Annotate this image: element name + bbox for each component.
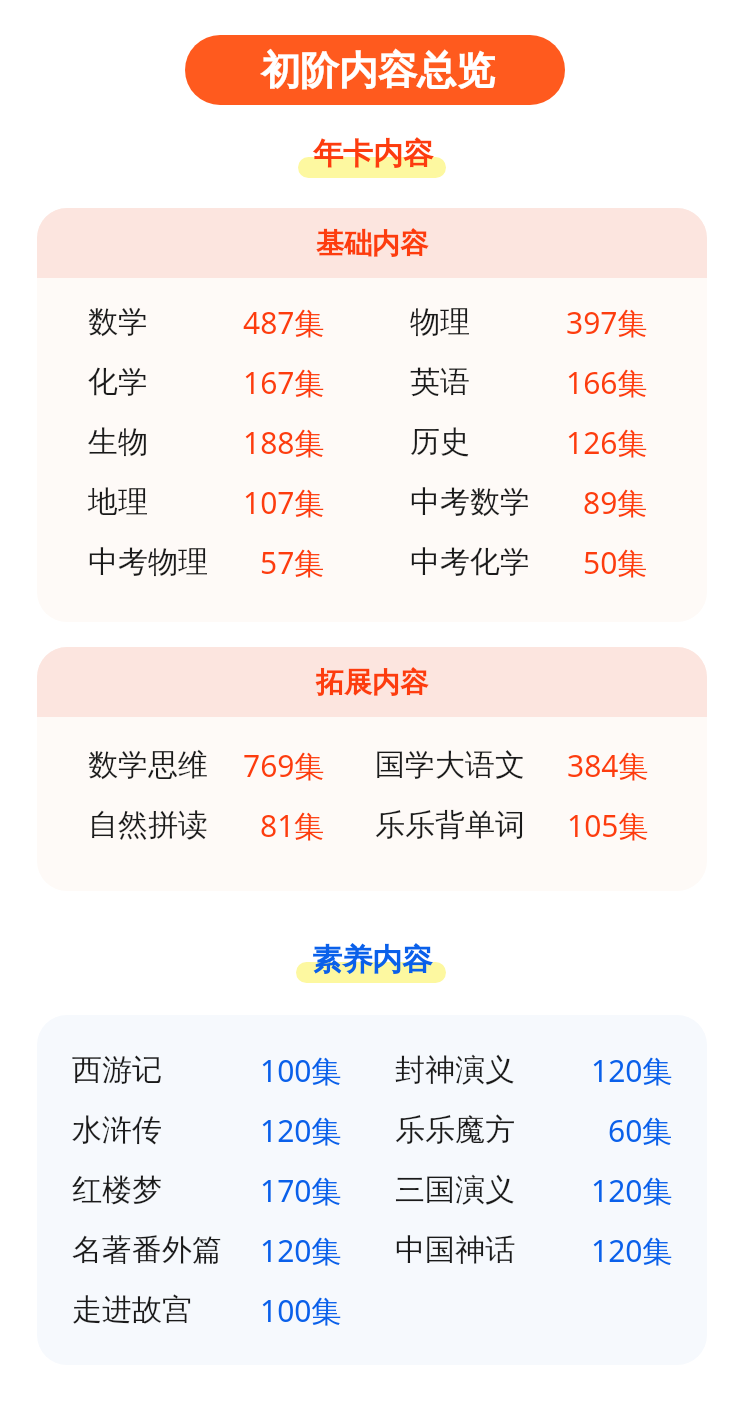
staticText: 化学 <box>88 363 148 401</box>
staticText: 数学 <box>88 303 148 341</box>
staticText: 188集 <box>243 422 325 463</box>
staticText: 105集 <box>567 805 649 846</box>
staticText: 397集 <box>566 302 648 343</box>
staticText: 封神演义 <box>395 1051 515 1089</box>
staticText: 红楼梦 <box>72 1171 162 1209</box>
staticText: 年卡内容 <box>313 135 433 173</box>
button[interactable]: 数学思维 <box>37 735 367 795</box>
button[interactable]: 名著番外篇 <box>37 1220 367 1280</box>
staticText: 384集 <box>567 745 649 786</box>
staticText: 地理 <box>88 483 148 521</box>
staticText: 120集 <box>591 1170 673 1211</box>
staticText: 487集 <box>243 302 325 343</box>
button[interactable]: 中考化学 <box>367 532 707 592</box>
staticText: 西游记 <box>72 1051 162 1089</box>
staticText: 60集 <box>608 1110 673 1151</box>
button[interactable]: 生物 <box>37 412 367 472</box>
button[interactable]: 乐乐魔方 <box>367 1100 707 1160</box>
staticText: 乐乐魔方 <box>395 1111 515 1149</box>
staticText: 100集 <box>260 1290 342 1331</box>
staticText: 中考物理 <box>88 543 208 581</box>
staticText: 167集 <box>243 362 325 403</box>
staticText: 历史 <box>410 423 470 461</box>
staticText: 170集 <box>260 1170 342 1211</box>
button[interactable]: 化学 <box>37 352 367 412</box>
button[interactable]: 国学大语文 <box>367 735 707 795</box>
staticText: 生物 <box>88 423 148 461</box>
staticText: 769集 <box>243 745 325 786</box>
button[interactable]: 初阶内容总览 <box>185 35 565 105</box>
staticText: 100集 <box>260 1050 342 1091</box>
staticText: 走进故宫 <box>72 1291 192 1329</box>
staticText: 数学思维 <box>88 746 208 784</box>
button[interactable]: 拓展内容 <box>37 647 707 717</box>
staticText: 拓展内容 <box>316 665 428 700</box>
staticText: 120集 <box>591 1050 673 1091</box>
staticText: 乐乐背单词 <box>375 806 525 844</box>
staticText: 名著番外篇 <box>72 1231 222 1269</box>
staticText: 国学大语文 <box>375 746 525 784</box>
button[interactable]: 地理 <box>37 472 367 532</box>
staticText: 基础内容 <box>316 226 428 261</box>
staticText: 自然拼读 <box>88 806 208 844</box>
staticText: 中考数学 <box>410 483 530 521</box>
staticText: 中国神话 <box>395 1231 515 1269</box>
staticText: 三国演义 <box>395 1171 515 1209</box>
button[interactable]: 中考物理 <box>37 532 367 592</box>
staticText: 81集 <box>260 805 325 846</box>
button[interactable]: 红楼梦 <box>37 1160 367 1220</box>
button[interactable]: 中考数学 <box>367 472 707 532</box>
button[interactable]: 中国神话 <box>367 1220 707 1280</box>
button[interactable]: 数学 <box>37 292 367 352</box>
button[interactable]: 水浒传 <box>37 1100 367 1160</box>
staticText: 物理 <box>410 303 470 341</box>
button[interactable]: 走进故宫 <box>37 1280 367 1340</box>
staticText: 中考化学 <box>410 543 530 581</box>
button[interactable]: 英语 <box>367 352 707 412</box>
button[interactable]: 物理 <box>367 292 707 352</box>
staticText: 107集 <box>243 482 325 523</box>
staticText: 120集 <box>591 1230 673 1271</box>
staticText: 初阶内容总览 <box>261 46 495 95</box>
staticText: 50集 <box>583 542 648 583</box>
button[interactable]: 乐乐背单词 <box>367 795 707 855</box>
button[interactable]: 基础内容 <box>37 208 707 278</box>
staticText: 素养内容 <box>312 941 432 979</box>
staticText: 166集 <box>566 362 648 403</box>
staticText: 120集 <box>260 1110 342 1151</box>
staticText: 120集 <box>260 1230 342 1271</box>
button[interactable]: 历史 <box>367 412 707 472</box>
button[interactable]: 封神演义 <box>367 1040 707 1100</box>
staticText: 57集 <box>260 542 325 583</box>
staticText: 水浒传 <box>72 1111 162 1149</box>
button[interactable]: 自然拼读 <box>37 795 367 855</box>
staticText: 英语 <box>410 363 470 401</box>
staticText: 89集 <box>583 482 648 523</box>
button[interactable]: 三国演义 <box>367 1160 707 1220</box>
button[interactable]: 西游记 <box>37 1040 367 1100</box>
staticText: 126集 <box>566 422 648 463</box>
